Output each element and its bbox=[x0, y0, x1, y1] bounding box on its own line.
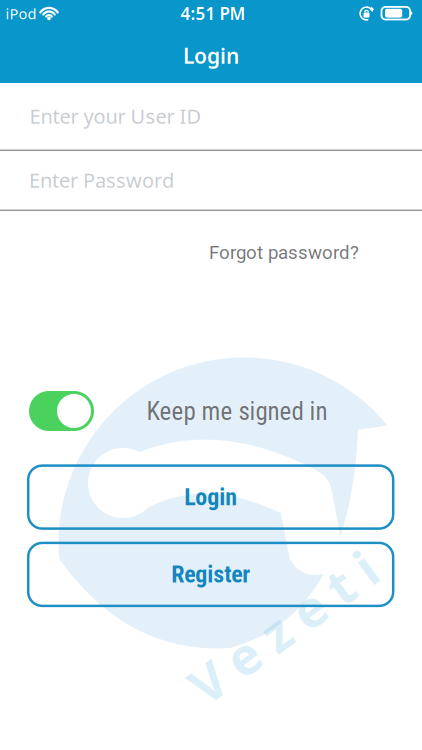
staticText: Enter your User ID bbox=[29, 102, 201, 130]
button[interactable]: Forgot password? bbox=[209, 242, 359, 263]
staticText: Keep me signed in bbox=[146, 397, 327, 426]
staticText: Forgot password? bbox=[209, 242, 359, 263]
button[interactable]: Register bbox=[28, 543, 393, 606]
staticText: Login bbox=[183, 41, 239, 70]
staticText: Login bbox=[184, 483, 237, 511]
staticText: Register bbox=[171, 560, 250, 588]
staticText: 4:51 PM bbox=[180, 2, 245, 25]
button[interactable]: Keep me signed in bbox=[29, 391, 94, 431]
staticText: Enter Password bbox=[29, 166, 174, 194]
button[interactable]: Login bbox=[28, 466, 393, 529]
staticText: iPod bbox=[5, 3, 36, 23]
staticText: Vezeti bbox=[173, 592, 392, 661]
